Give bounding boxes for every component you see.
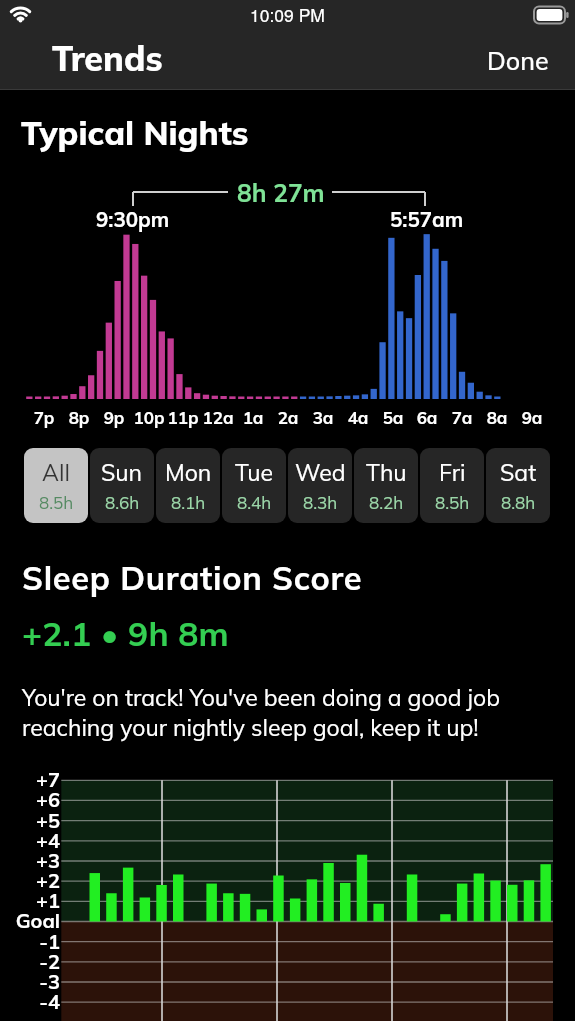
other: Wi-Fi — [9, 5, 35, 27]
staticText: 6a — [407, 407, 447, 428]
button[interactable]: Tue — [222, 448, 286, 523]
staticText: 9p — [94, 407, 134, 428]
staticText: 8.2h — [369, 492, 404, 513]
staticText: +2 — [0, 868, 60, 893]
staticText: 8h 27m — [237, 177, 325, 208]
staticText: 3a — [303, 407, 343, 428]
staticText: 8.5h — [435, 492, 470, 513]
button[interactable]: Mon — [156, 448, 220, 523]
staticText: 10p — [129, 407, 169, 428]
staticText: Goal — [0, 908, 60, 933]
button[interactable]: Wed — [288, 448, 352, 523]
staticText: 8a — [477, 407, 517, 428]
staticText: 8.8h — [501, 492, 536, 513]
staticText: Sleep Duration Score — [22, 557, 363, 598]
staticText: 8p — [59, 407, 99, 428]
staticText: 10:09 PM — [250, 2, 325, 27]
staticText: Done — [487, 45, 549, 75]
staticText: 8.4h — [237, 492, 272, 513]
staticText: +3 — [0, 848, 60, 873]
staticText: +5 — [0, 808, 60, 833]
staticText: -1 — [0, 929, 60, 954]
staticText: 5a — [373, 407, 413, 428]
staticText: Tue — [235, 458, 274, 487]
staticText: 11p — [163, 407, 203, 428]
button[interactable]: Done — [461, 30, 575, 90]
staticText: 9a — [512, 407, 552, 428]
staticText: Thu — [366, 458, 407, 487]
staticText: All — [42, 458, 70, 487]
staticText: 8.1h — [171, 492, 206, 513]
staticText: 5:57am — [390, 206, 464, 232]
button[interactable]: Sat — [486, 448, 550, 523]
staticText: +1 — [0, 888, 60, 913]
staticText: Sat — [500, 458, 537, 487]
staticText: 4a — [338, 407, 378, 428]
staticText: Typical Nights — [21, 112, 249, 153]
staticText: -3 — [0, 969, 60, 994]
staticText: Trends — [52, 37, 163, 80]
staticText: 8.5h — [39, 492, 74, 513]
staticText: -2 — [0, 949, 60, 974]
staticText: -4 — [0, 989, 60, 1014]
staticText: Fri — [439, 458, 466, 487]
staticText: 2a — [268, 407, 308, 428]
staticText: Mon — [165, 458, 212, 487]
staticText: Wed — [295, 458, 346, 487]
button[interactable]: Thu — [354, 448, 418, 523]
staticText: +7 — [0, 767, 60, 792]
button[interactable]: Sun — [90, 448, 154, 523]
staticText: +4 — [0, 828, 60, 853]
staticText: 7p — [24, 407, 64, 428]
staticText: 1a — [233, 407, 273, 428]
other: Battery — [530, 2, 575, 28]
staticText: 12a — [198, 407, 238, 428]
staticText: +2.1 • 9h 8m — [22, 612, 229, 654]
staticText: 7a — [442, 407, 482, 428]
button[interactable]: Fri — [420, 448, 484, 523]
staticText: 8.3h — [303, 492, 338, 513]
staticText: 9:30pm — [96, 206, 170, 232]
staticText: +6 — [0, 787, 60, 812]
staticText: You're on track! You've been doing a goo… — [22, 683, 508, 742]
staticText: Sun — [101, 458, 143, 487]
staticText: 8.6h — [105, 492, 140, 513]
button[interactable]: All — [24, 448, 88, 523]
